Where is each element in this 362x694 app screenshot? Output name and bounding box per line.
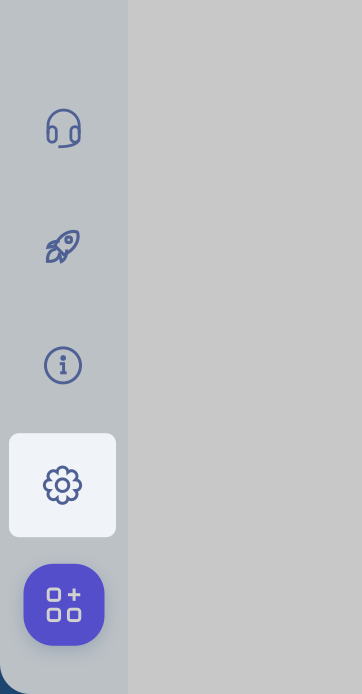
button[interactable]: About: [33, 341, 93, 389]
button[interactable]: Get started: [34, 222, 94, 270]
button[interactable]: Support: [34, 104, 94, 152]
button[interactable]: Settings: [9, 433, 116, 537]
button[interactable]: Add app: [23, 564, 104, 646]
